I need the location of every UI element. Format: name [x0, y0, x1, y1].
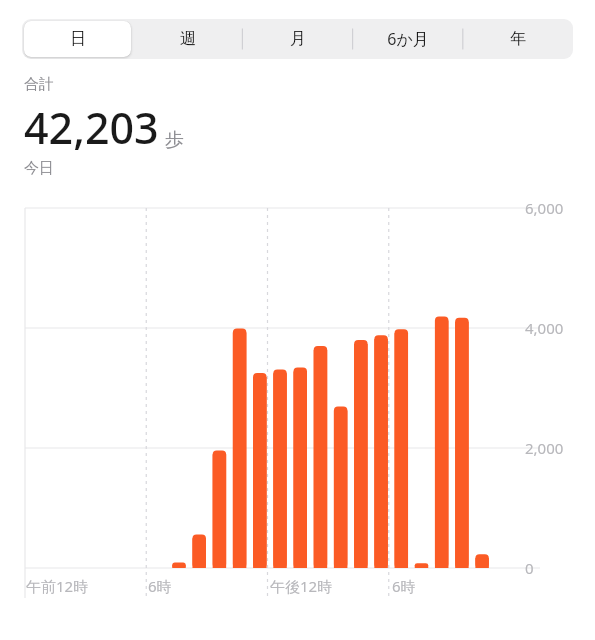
staticText: 2,000	[525, 438, 564, 458]
staticText: 歩	[165, 128, 184, 152]
staticText: 合計	[24, 75, 54, 94]
staticText: 午前12時	[26, 576, 89, 596]
staticText: 午後12時	[270, 576, 333, 596]
button[interactable]: 月	[245, 21, 351, 57]
staticText: 42,203	[24, 98, 159, 157]
staticText: 月	[290, 29, 306, 49]
staticText: 4,000	[525, 318, 564, 338]
staticText: 年	[510, 29, 526, 49]
button[interactable]: 6か月	[355, 21, 461, 57]
button[interactable]: 年	[465, 21, 571, 57]
button[interactable]: 週	[135, 21, 241, 57]
staticText: 6時	[148, 576, 172, 596]
staticText: 日	[70, 29, 86, 49]
staticText: 今日	[24, 159, 54, 178]
staticText: 0	[525, 558, 534, 578]
staticText: 週	[180, 29, 196, 49]
staticText: 6時	[392, 576, 416, 596]
staticText: 6か月	[387, 28, 429, 50]
button[interactable]: 日	[24, 21, 131, 57]
staticText: 6,000	[525, 198, 564, 218]
